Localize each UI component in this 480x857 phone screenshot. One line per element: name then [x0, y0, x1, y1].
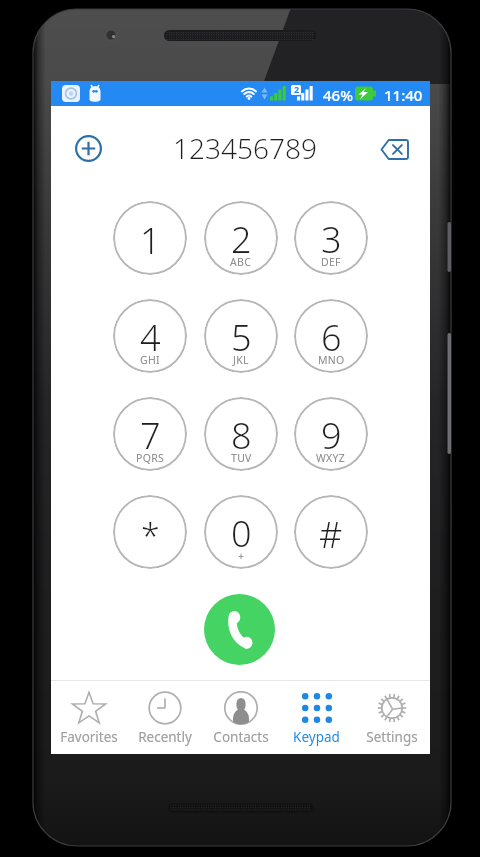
- staticText: TUV: [231, 451, 252, 465]
- button[interactable]: #: [294, 495, 368, 569]
- button[interactable]: 2: [204, 201, 278, 275]
- staticText: 5: [231, 313, 252, 362]
- staticText: ABC: [230, 255, 252, 269]
- staticText: GHI: [140, 353, 160, 367]
- staticText: WXYZ: [316, 451, 346, 465]
- button[interactable]: 8: [204, 397, 278, 471]
- button[interactable]: Favorites: [51, 681, 127, 754]
- button[interactable]: 9: [294, 397, 368, 471]
- button[interactable]: 5: [204, 299, 278, 373]
- staticText: 4: [140, 313, 161, 362]
- staticText: 1: [140, 216, 161, 265]
- staticText: MNO: [318, 353, 345, 367]
- button[interactable]: 1: [113, 201, 187, 275]
- button[interactable]: 7: [113, 397, 187, 471]
- staticText: Favorites: [60, 728, 118, 746]
- staticText: PQRS: [136, 451, 165, 465]
- staticText: 6: [321, 313, 342, 362]
- button[interactable]: 0: [204, 495, 278, 569]
- button[interactable]: Contacts: [203, 681, 279, 754]
- staticText: 2: [294, 83, 300, 95]
- button[interactable]: Backspace: [376, 133, 412, 165]
- staticText: 11:40: [384, 85, 423, 105]
- staticText: +: [238, 549, 245, 563]
- button[interactable]: Settings: [354, 681, 430, 754]
- staticText: 2: [231, 215, 252, 264]
- staticText: *: [141, 513, 160, 559]
- button[interactable]: 4: [113, 299, 187, 373]
- button[interactable]: Call: [204, 594, 275, 665]
- button[interactable]: 3: [294, 201, 368, 275]
- staticText: 8: [231, 411, 252, 460]
- staticText: #: [319, 510, 343, 559]
- button[interactable]: Add contact: [73, 133, 103, 163]
- button[interactable]: Recently: [127, 681, 203, 754]
- staticText: 3: [321, 215, 342, 264]
- staticText: Keypad: [293, 728, 340, 746]
- staticText: Contacts: [213, 728, 269, 746]
- button[interactable]: Keypad: [278, 681, 354, 754]
- button[interactable]: *: [113, 495, 187, 569]
- staticText: JKL: [233, 353, 249, 367]
- staticText: 9: [321, 411, 342, 460]
- staticText: Recently: [138, 728, 192, 746]
- staticText: 123456789: [173, 129, 317, 167]
- staticText: DEF: [321, 255, 341, 269]
- staticText: 0: [231, 509, 252, 558]
- staticText: 7: [140, 411, 161, 460]
- button[interactable]: 6: [294, 299, 368, 373]
- staticText: Settings: [366, 728, 418, 746]
- staticText: 46%: [323, 85, 353, 105]
